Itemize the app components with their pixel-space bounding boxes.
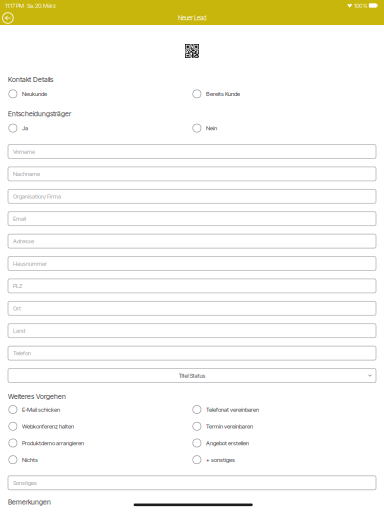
staticText: Neuer Lead [178, 14, 206, 22]
button[interactable]: Webkonferenz halten [8, 421, 192, 432]
button[interactable]: Nein [192, 123, 376, 134]
staticText: Termin vereinbaren [206, 423, 253, 430]
staticText: Entscheidungsträger [8, 110, 71, 118]
button[interactable]: Telefonat vereinbaren [192, 404, 376, 415]
button[interactable]: Neukunde [8, 88, 192, 99]
staticText: Organisation/ Firma [13, 193, 61, 200]
staticText: 11:17 PM Sa. 20. März [5, 2, 56, 9]
staticText: Kontakt Details [8, 75, 53, 84]
staticText: Bereits Kunde [206, 90, 240, 97]
button[interactable]: Titel Status [8, 368, 376, 382]
staticText: Produktdemo arrangieren [22, 439, 84, 447]
button[interactable]: Telefon [8, 346, 376, 360]
staticText: Sonstiges [13, 479, 37, 486]
button[interactable]: Visitenkarte scannen [181, 40, 203, 62]
staticText: Ja [22, 125, 28, 132]
button[interactable]: Back [0, 11, 22, 25]
button[interactable]: Vorname [8, 144, 376, 158]
staticText: Email [13, 215, 26, 222]
button[interactable]: Produktdemo arrangieren [8, 437, 192, 448]
staticText: Vorname [13, 148, 35, 155]
staticText: 100 % [354, 2, 367, 9]
staticText: Webkonferenz halten [22, 423, 74, 430]
staticText: + sonstiges [206, 456, 235, 463]
staticText: PLZ [13, 282, 22, 289]
staticText: Hausnummer [13, 260, 47, 267]
staticText: E-Mail schicken [22, 406, 60, 413]
staticText: Ort [13, 305, 21, 312]
button[interactable]: + sonstiges [192, 454, 376, 465]
button[interactable]: PLZ [8, 279, 376, 293]
staticText: Nichts [22, 456, 38, 463]
button[interactable]: Angebot erstellen [192, 437, 376, 448]
button[interactable]: Nachname [8, 167, 376, 181]
staticText: Adresse [13, 238, 34, 245]
staticText: Angebot erstellen [206, 439, 249, 447]
button[interactable]: E-Mail schicken [8, 404, 192, 415]
button[interactable]: Ort [8, 301, 376, 315]
staticText: Land [13, 327, 25, 334]
button[interactable]: Nichts [8, 454, 192, 465]
button[interactable]: Adresse [8, 234, 376, 248]
button[interactable]: Bereits Kunde [192, 88, 376, 99]
button[interactable]: Hausnummer [8, 256, 376, 270]
button[interactable]: Ja [8, 123, 192, 134]
button[interactable]: Email [8, 212, 376, 226]
staticText: Nachname [13, 170, 40, 177]
button[interactable]: Termin vereinbaren [192, 421, 376, 432]
staticText: Telefonat vereinbaren [206, 406, 259, 413]
staticText: Nein [206, 125, 217, 132]
staticText: Telefon [13, 350, 31, 357]
staticText: Neukunde [22, 90, 47, 97]
button[interactable]: Organisation/ Firma [8, 189, 376, 203]
staticText: Weiteres Vorgehen [8, 392, 66, 401]
staticText: Bemerkungen [8, 498, 51, 506]
staticText: Titel Status [178, 372, 205, 379]
button[interactable]: Sonstiges [8, 476, 376, 490]
button[interactable]: Land [8, 324, 376, 338]
